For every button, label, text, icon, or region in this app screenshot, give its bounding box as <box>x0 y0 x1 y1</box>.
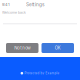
staticText: Not now <box>14 45 30 51</box>
staticText: Welcome back <box>2 10 26 15</box>
staticText: 9:41 <box>2 2 10 7</box>
staticText: Protected by Example <box>24 71 59 75</box>
staticText: OK <box>55 45 61 51</box>
staticText: Settings <box>26 2 45 7</box>
button[interactable]: OK <box>41 43 74 53</box>
button[interactable]: Not now <box>6 43 38 53</box>
